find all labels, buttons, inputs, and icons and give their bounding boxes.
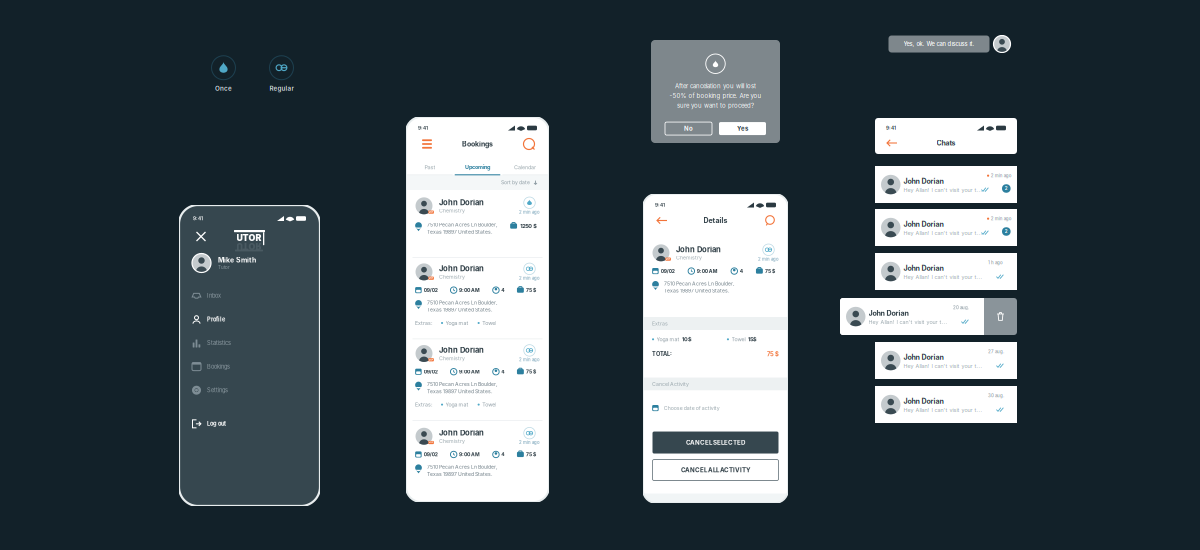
staticText: 2 min ago: [519, 209, 540, 215]
staticText: Texas 19897 United States.: [427, 471, 492, 477]
button[interactable]: Yes: [719, 122, 766, 135]
button[interactable]: Choose date of activity: [643, 391, 788, 426]
button[interactable]: VIP: [406, 339, 549, 420]
staticText: Hey Allan! I can't visit your t...: [903, 230, 982, 236]
staticText: John Dorian: [903, 353, 943, 361]
staticText: Statistics: [207, 340, 231, 346]
button[interactable]: VIP: [406, 258, 549, 339]
staticText: Upcoming: [465, 164, 490, 170]
staticText: 75 $: [765, 268, 775, 274]
staticText: Profile: [207, 316, 225, 323]
staticText: Yoga mat: [657, 336, 680, 342]
staticText: 09/02: [661, 268, 675, 274]
staticText: TOTAL:: [652, 351, 672, 357]
button[interactable]: Inbox: [179, 284, 320, 308]
button[interactable]: VIP: [406, 190, 549, 257]
staticText: Hey Allan! I can't visit your t...: [903, 187, 982, 193]
button[interactable]: John Dorian: [875, 209, 1017, 246]
button[interactable]: Back: [883, 135, 901, 151]
button[interactable]: Past: [406, 156, 454, 175]
staticText: Calendar: [514, 164, 536, 170]
staticText: Texas 19897 United States.: [664, 288, 729, 294]
staticText: 75 $: [526, 369, 536, 375]
button[interactable]: Bookings: [179, 355, 320, 378]
button[interactable]: John Dorian: [875, 342, 1017, 379]
staticText: Hey Allan! I can't visit your t...: [903, 407, 982, 413]
staticText: VIP: [429, 358, 434, 361]
button[interactable]: John Dorian: [875, 166, 1017, 203]
button[interactable]: John Dorian: [840, 298, 984, 335]
staticText: Yes, ok. We can discuss it.: [903, 40, 974, 47]
staticText: 9:00 AM: [459, 369, 480, 375]
staticText: John Dorian: [903, 264, 943, 272]
staticText: Yes: [737, 125, 748, 132]
staticText: 4: [740, 268, 743, 274]
staticText: 2 min ago: [519, 357, 540, 362]
button[interactable]: Settings: [179, 378, 320, 402]
staticText: Bookings: [462, 140, 493, 148]
staticText: -50% of booking price. Are you: [669, 92, 761, 99]
staticText: Chemistry: [439, 438, 465, 444]
staticText: John Dorian: [903, 397, 943, 405]
button[interactable]: CANCEL SELECTED: [652, 432, 778, 454]
staticText: 7510 Pecan Acres Ln Boulder,: [664, 280, 734, 287]
staticText: John Dorian: [903, 220, 943, 228]
staticText: Sort by date: [501, 179, 530, 186]
staticText: 27 aug.: [988, 349, 1004, 354]
staticText: Hey Allan! I can't visit your t...: [868, 319, 947, 325]
staticText: Yoga mat: [446, 401, 469, 408]
staticText: Chemistry: [439, 274, 465, 280]
staticText: John Dorian: [903, 177, 943, 185]
staticText: Details: [703, 216, 727, 225]
staticText: Towel: [482, 401, 496, 408]
staticText: 09/02: [424, 369, 438, 375]
button[interactable]: Log out: [179, 412, 320, 436]
button[interactable]: Menu: [417, 135, 437, 153]
staticText: Bookings: [207, 363, 230, 370]
staticText: 09/02: [424, 287, 438, 293]
button[interactable]: Statistics: [179, 331, 320, 355]
staticText: Settings: [207, 387, 228, 394]
button[interactable]: VIP: [406, 421, 549, 491]
staticText: 9:41: [193, 216, 203, 221]
staticText: Tutor: [218, 265, 230, 270]
staticText: John Dorian: [439, 428, 484, 437]
staticText: John Dorian: [439, 198, 484, 207]
button[interactable]: No: [665, 122, 712, 135]
staticText: 75 $: [767, 351, 779, 357]
staticText: Cancel Activity: [652, 381, 689, 387]
staticText: 9:41: [418, 125, 428, 131]
staticText: 9:00 AM: [697, 268, 718, 274]
staticText: 4: [501, 369, 504, 375]
button[interactable]: John Dorian: [875, 253, 1017, 290]
button[interactable]: Chat: [762, 212, 778, 228]
staticText: Hey Allan! I can't visit your t...: [903, 363, 982, 369]
button[interactable]: Upcoming: [454, 156, 501, 175]
button[interactable]: Search: [520, 135, 538, 153]
staticText: VIP: [429, 441, 434, 444]
staticText: Chemistry: [439, 207, 465, 214]
staticText: Towel: [482, 320, 496, 326]
staticText: 20 aug.: [953, 305, 969, 310]
staticText: 30 aug.: [988, 393, 1004, 398]
button[interactable]: Calendar: [501, 156, 549, 175]
staticText: Log out: [207, 420, 226, 427]
button[interactable]: Back: [653, 212, 671, 228]
button[interactable]: Profile: [179, 308, 320, 331]
button[interactable]: Regular: [261, 54, 301, 94]
staticText: 2 min ago: [519, 440, 540, 445]
staticText: 2 min ago: [991, 173, 1012, 178]
button[interactable]: Sort by date: [501, 175, 549, 190]
button[interactable]: CANCEL ALL ACTIVITY: [652, 460, 778, 481]
button[interactable]: Close: [190, 225, 212, 247]
button[interactable]: Delete: [984, 298, 1017, 335]
staticText: Regular: [269, 85, 293, 92]
button[interactable]: John Dorian: [875, 386, 1017, 423]
staticText: 1250 $: [520, 223, 537, 229]
button[interactable]: Once: [206, 54, 240, 94]
button[interactable]: Mike Smith: [179, 250, 320, 276]
staticText: 15$: [748, 336, 757, 343]
staticText: 7510 Pecan Acres Ln Boulder,: [427, 464, 497, 470]
staticText: No: [684, 125, 693, 132]
staticText: CANCEL ALL ACTIVITY: [681, 466, 750, 474]
